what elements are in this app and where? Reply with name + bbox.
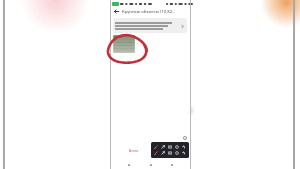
- button[interactable]: Tool 10: [181, 150, 187, 156]
- button[interactable]: Settings: [182, 135, 187, 140]
- button[interactable]: Tool 8: [167, 150, 173, 156]
- button[interactable]: Object thumbnail: [113, 35, 135, 53]
- staticText: Всего: [129, 148, 139, 153]
- staticText: Крупные объекты (10,82…: [122, 9, 176, 15]
- button[interactable]: Back: [168, 161, 175, 168]
- button[interactable]: Tool 2: [160, 144, 166, 150]
- button[interactable]: Tool 7: [160, 150, 166, 156]
- button[interactable]: Home: [147, 161, 154, 168]
- button[interactable]: Tool 4: [174, 144, 180, 150]
- button[interactable]: Tool 6: [153, 150, 159, 156]
- button[interactable]: Open details: [113, 18, 187, 33]
- button[interactable]: Tool 3: [167, 144, 173, 150]
- button[interactable]: Tool 1: [153, 144, 159, 150]
- button[interactable]: Tool 5: [181, 144, 187, 150]
- button[interactable]: Open details: [179, 23, 185, 29]
- button[interactable]: Recents: [125, 161, 132, 168]
- button[interactable]: Back: [113, 8, 120, 15]
- button[interactable]: Tool 9: [174, 150, 180, 156]
